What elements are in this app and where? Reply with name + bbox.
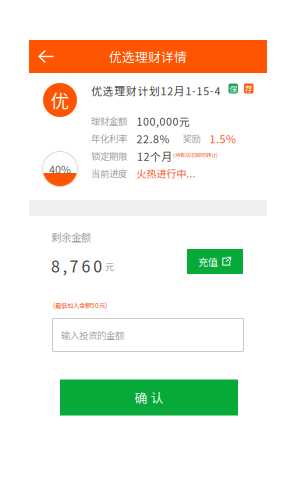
staticText: 年化利率: [91, 131, 127, 145]
staticText: (持有30日即可转让): [173, 151, 218, 159]
staticText: 理财金额: [91, 114, 127, 127]
staticText: 锁定期限: [91, 149, 127, 162]
button[interactable]: Back: [29, 40, 63, 73]
staticText: 22.8%: [136, 131, 169, 146]
staticText: 1.5%: [209, 131, 236, 146]
staticText: 输入投资的金额: [61, 328, 124, 342]
staticText: 当前进度: [91, 166, 127, 180]
staticText: 12个月: [137, 148, 172, 164]
staticText: 确 认: [134, 388, 163, 407]
staticText: 火热进行中...: [136, 166, 195, 180]
button[interactable]: 充值: [187, 249, 243, 274]
staticText: 优: [50, 86, 69, 113]
staticText: 8,760: [51, 254, 102, 277]
staticText: 剩余金额: [51, 229, 91, 245]
staticText: 元: [105, 259, 114, 273]
staticText: 奖励: [182, 131, 200, 145]
staticText: 充值: [198, 254, 218, 269]
button[interactable]: 确 认: [60, 379, 238, 415]
staticText: 优选理财计划12月1-15-4: [91, 83, 220, 98]
staticText: 100,000元: [136, 113, 190, 129]
staticText: 保: [229, 83, 237, 94]
staticText: (最低加入金额50元): [53, 300, 107, 310]
staticText: 荐: [245, 83, 253, 94]
staticText: 优选理财详情: [109, 47, 187, 66]
staticText: 40%: [49, 161, 71, 177]
